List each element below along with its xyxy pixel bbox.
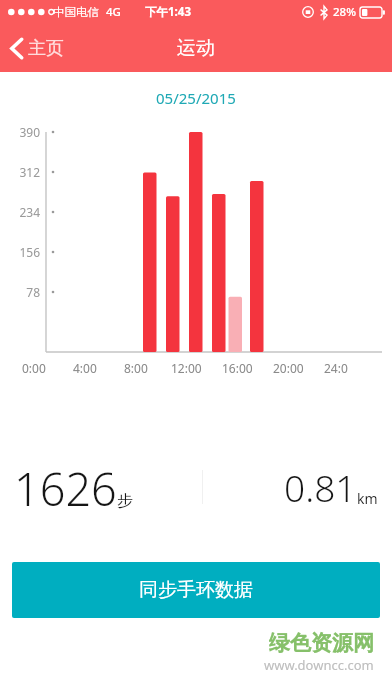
staticText: 20:00 [273, 360, 321, 376]
staticText: 16:00 [222, 360, 270, 376]
staticText: 主页 [28, 37, 64, 60]
staticText: 28% [333, 4, 356, 20]
staticText: 绿色资源网 [269, 630, 374, 656]
staticText: 4G [106, 4, 121, 20]
staticText: www.downcc.com [264, 656, 374, 674]
staticText: 4:00 [73, 360, 121, 376]
staticText: 234 [2, 204, 40, 220]
other: Back [10, 37, 23, 60]
staticText: 24:0 [324, 360, 372, 376]
staticText: 同步手环数据 [139, 578, 253, 602]
staticText: 8:00 [124, 360, 172, 376]
staticText: km [357, 489, 378, 508]
staticText: 中国电信 [53, 5, 99, 19]
staticText: 运动 [177, 36, 215, 60]
staticText: 0.81 [284, 462, 357, 512]
staticText: 12:00 [171, 360, 219, 376]
button[interactable]: 同步手环数据 [12, 562, 380, 618]
staticText: 05/25/2015 [156, 88, 236, 108]
staticText: 312 [2, 164, 40, 180]
staticText: 下午1:43 [145, 4, 191, 20]
staticText: 78 [2, 284, 40, 300]
staticText: 1626 [14, 458, 117, 516]
staticText: 390 [2, 124, 40, 140]
staticText: 步 [117, 491, 133, 511]
staticText: 156 [2, 244, 40, 260]
staticText: 0:00 [22, 360, 70, 376]
button[interactable]: Back [0, 29, 80, 68]
